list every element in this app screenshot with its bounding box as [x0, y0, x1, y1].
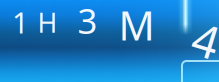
staticText: 3 — [77, 0, 97, 43]
staticText: H — [37, 5, 57, 40]
staticText: 1 — [12, 2, 29, 41]
staticText: 4 — [193, 10, 219, 70]
staticText: M — [118, 0, 154, 51]
